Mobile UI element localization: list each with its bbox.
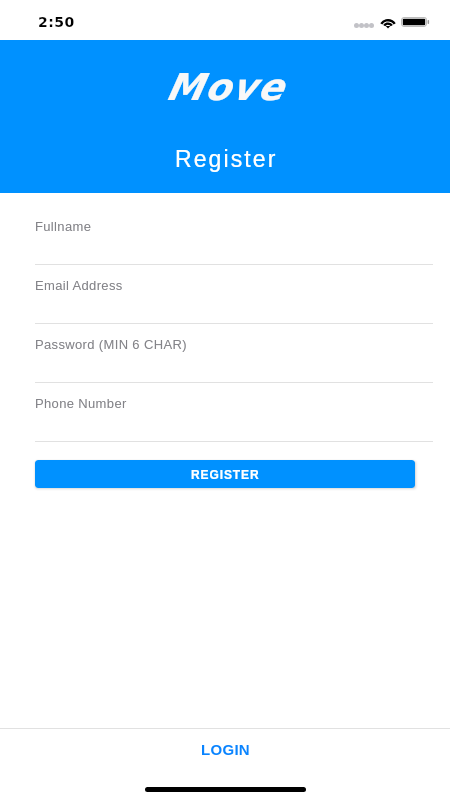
- button[interactable]: Fullname: [0, 206, 450, 265]
- staticText: Move: [167, 66, 285, 109]
- staticText: Fullname: [35, 219, 92, 234]
- other: Battery: [401, 17, 430, 27]
- button[interactable]: Password (MIN 6 CHAR): [0, 324, 450, 383]
- button[interactable]: LOGIN: [0, 729, 450, 769]
- staticText: 2:50: [38, 14, 75, 30]
- staticText: LOGIN: [201, 741, 250, 758]
- button[interactable]: REGISTER: [35, 460, 415, 488]
- staticText: Register: [175, 146, 278, 172]
- other: Wi-Fi: [379, 16, 397, 28]
- button[interactable]: Phone Number: [0, 383, 450, 442]
- staticText: REGISTER: [191, 468, 260, 481]
- other: Cellular signal: [354, 23, 374, 28]
- button[interactable]: Email Address: [0, 265, 450, 324]
- staticText: Password (MIN 6 CHAR): [35, 337, 187, 352]
- staticText: Phone Number: [35, 396, 127, 411]
- staticText: Email Address: [35, 278, 123, 293]
